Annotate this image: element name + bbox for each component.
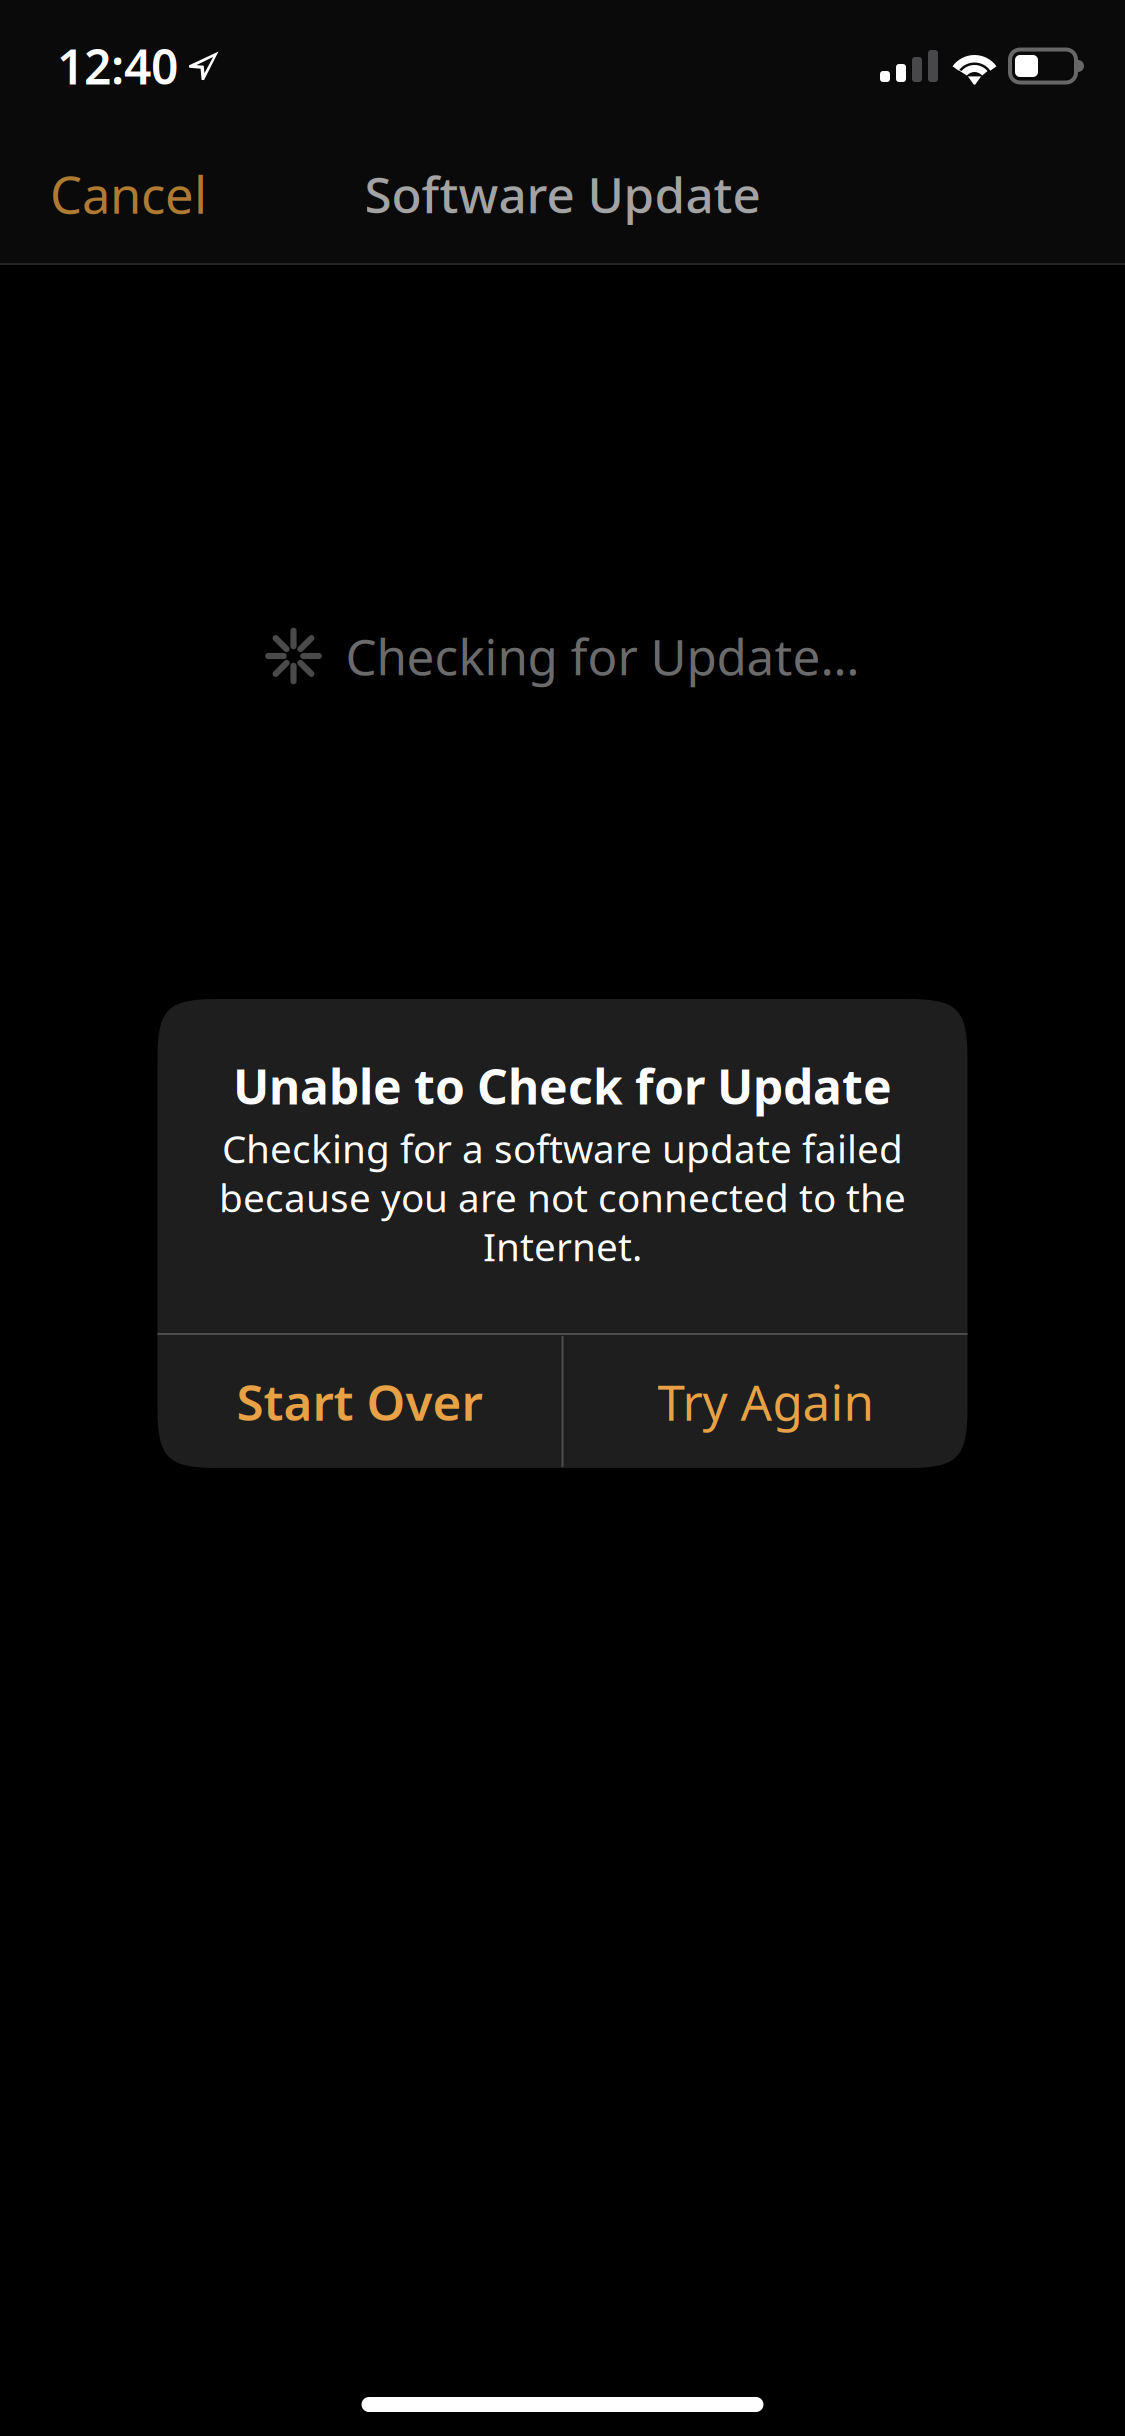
staticText: Software Update (364, 161, 760, 227)
staticText: because you are not connected to the (219, 1172, 906, 1223)
staticText: Cancel (50, 160, 207, 228)
staticText: Start Over (236, 1369, 482, 1434)
staticText: Try Again (657, 1369, 873, 1434)
staticText: 12:40 (57, 34, 178, 98)
button[interactable]: Cancel (0, 132, 239, 256)
staticText: Checking for Update… (345, 623, 859, 689)
button[interactable]: Try Again (563, 1336, 967, 1467)
staticText: Unable to Check for Update (233, 1054, 892, 1118)
button[interactable]: Start Over (157, 1336, 561, 1467)
staticText: Internet. (483, 1221, 642, 1272)
staticText: Checking for a software update failed (222, 1123, 903, 1174)
